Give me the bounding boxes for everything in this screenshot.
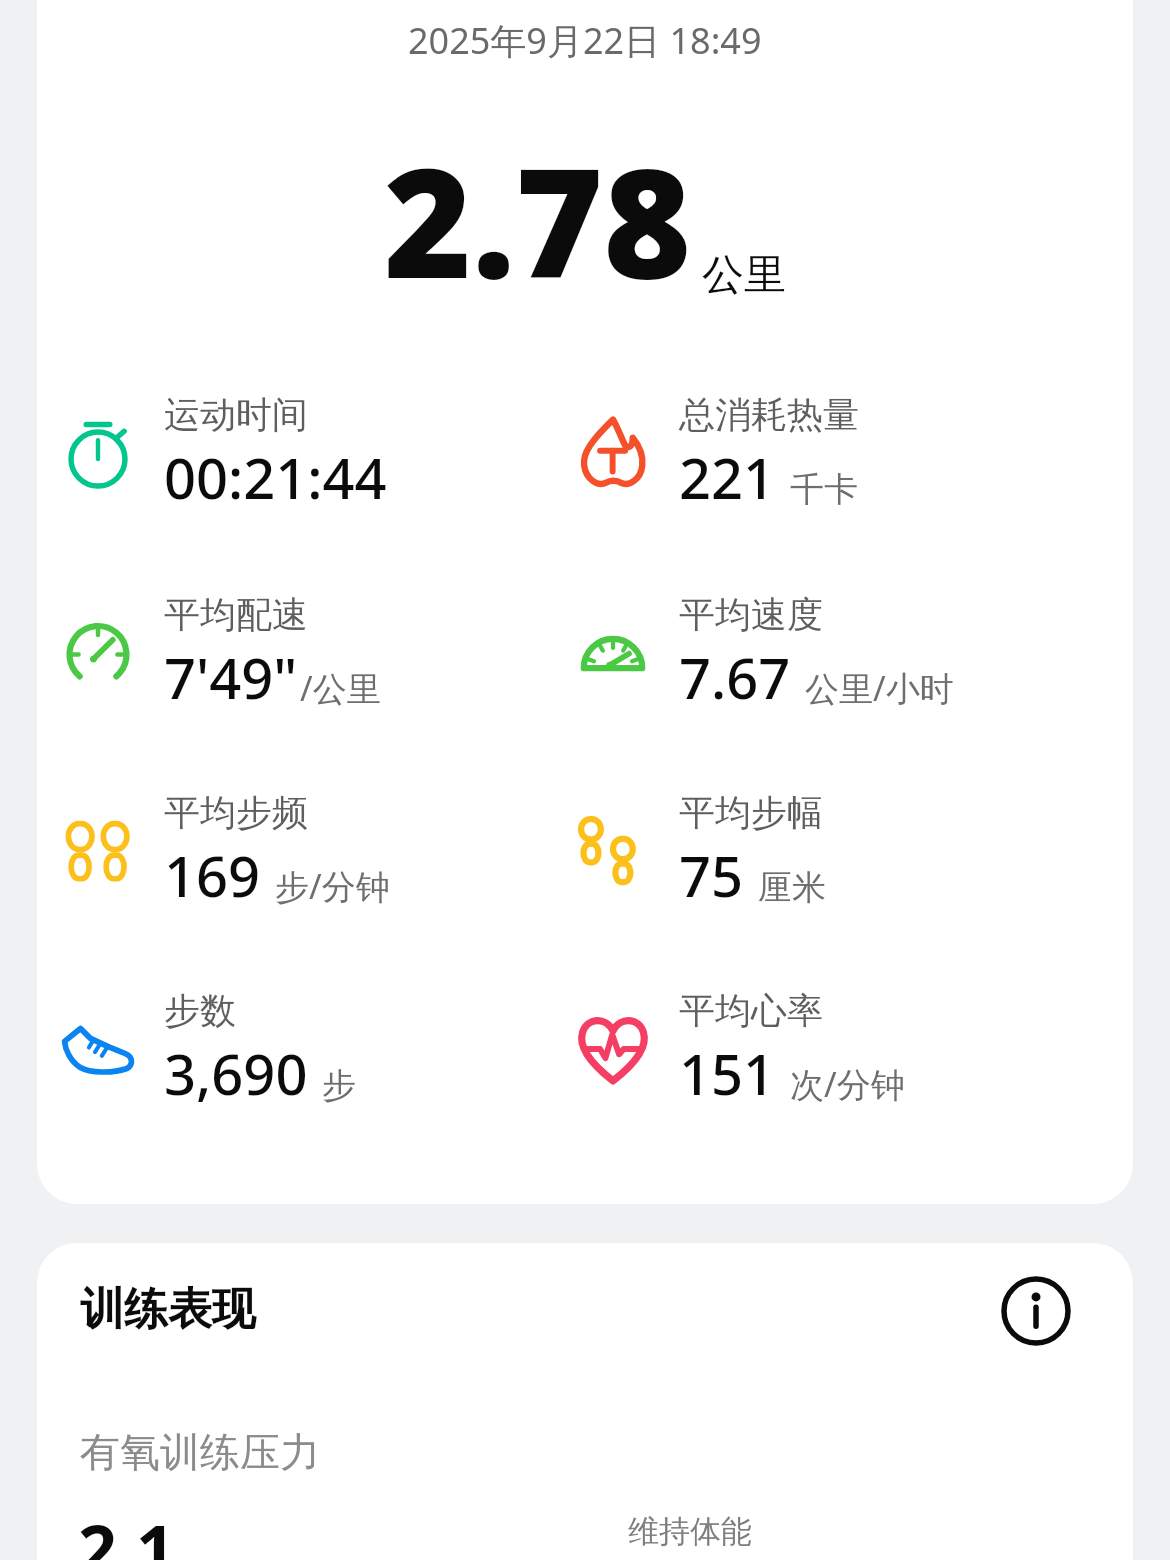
staticText: 厘米 — [758, 866, 826, 909]
staticText: 次/分钟 — [790, 1061, 905, 1107]
staticText: 公里 — [702, 249, 786, 302]
button[interactable]: 平均心率 — [575, 984, 1085, 1114]
staticText: 运动时间 — [164, 392, 308, 437]
button[interactable]: 平均配速 — [60, 588, 570, 718]
staticText: 151 — [679, 1035, 776, 1111]
staticText: 平均步频 — [164, 790, 308, 835]
staticText: 维持体能 — [628, 1512, 752, 1551]
staticText: 2025年9月22日 18:49 — [408, 16, 762, 65]
button[interactable]: 步数 — [60, 984, 570, 1114]
staticText: 平均心率 — [679, 988, 823, 1033]
staticText: 7'49" — [164, 639, 298, 715]
staticText: 千卡 — [790, 468, 858, 511]
staticText: 步数 — [164, 988, 236, 1033]
button[interactable]: 运动时间 — [60, 388, 570, 518]
button[interactable]: Information about training performance — [996, 1271, 1076, 1351]
staticText: 有氧训练压力 — [80, 1427, 320, 1477]
staticText: 平均速度 — [679, 592, 823, 637]
staticText: 7.67 — [679, 639, 791, 715]
staticText: 总消耗热量 — [679, 392, 859, 437]
staticText: 步 — [322, 1064, 356, 1107]
staticText: 75 — [679, 837, 744, 913]
staticText: 步/分钟 — [275, 863, 390, 909]
button[interactable]: 平均步幅 — [575, 786, 1085, 916]
staticText: 训练表现 — [80, 1282, 256, 1337]
staticText: 公里/小时 — [805, 665, 954, 711]
button[interactable]: 平均速度 — [575, 588, 1085, 718]
button[interactable]: 总消耗热量 — [575, 388, 1085, 518]
staticText: 3,690 — [164, 1035, 308, 1111]
button[interactable]: 平均步频 — [60, 786, 570, 916]
staticText: 221 — [679, 439, 776, 515]
staticText: 2.1 — [78, 1502, 175, 1560]
staticText: 169 — [164, 837, 261, 913]
staticText: 2.78 — [384, 118, 692, 322]
staticText: 平均配速 — [164, 592, 308, 637]
staticText: 平均步幅 — [679, 790, 823, 835]
staticText: /公里 — [300, 665, 381, 711]
staticText: 00:21:44 — [164, 439, 387, 515]
